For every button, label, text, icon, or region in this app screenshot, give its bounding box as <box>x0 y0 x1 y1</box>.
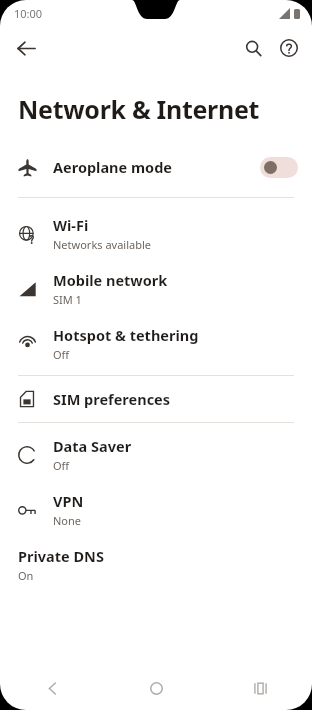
staticText: None <box>53 513 82 528</box>
staticText: Data Saver <box>53 436 132 456</box>
button[interactable]: Back <box>6 28 46 68</box>
button[interactable]: SIM preferences <box>0 376 312 422</box>
button[interactable]: Recent apps <box>208 666 312 710</box>
button[interactable]: Private DNS <box>0 537 312 592</box>
button[interactable]: Help <box>271 30 307 66</box>
staticText: Aeroplane mode <box>53 157 172 177</box>
button[interactable]: Mobile network <box>0 261 312 316</box>
staticText: Off <box>53 458 70 473</box>
staticText: Hotspot & tethering <box>53 325 199 345</box>
button[interactable]: Aeroplane mode toggle <box>260 157 298 178</box>
button[interactable]: Back <box>0 666 104 710</box>
staticText: Private DNS <box>18 546 104 566</box>
button[interactable]: Search <box>235 30 271 66</box>
staticText: VPN <box>53 491 84 511</box>
staticText: On <box>18 568 34 583</box>
button[interactable]: Data Saver <box>0 427 312 482</box>
button[interactable]: Home <box>104 666 208 710</box>
staticText: Mobile network <box>53 270 168 290</box>
staticText: Networks available <box>53 237 151 252</box>
button[interactable]: Hotspot & tethering <box>0 316 312 371</box>
staticText: Wi-Fi <box>53 215 89 235</box>
staticText: Network & Internet <box>18 92 260 126</box>
staticText: 10:00 <box>14 6 43 21</box>
staticText: SIM preferences <box>53 389 171 409</box>
button[interactable]: VPN <box>0 482 312 537</box>
button[interactable]: Wi-Fi <box>0 206 312 261</box>
button[interactable]: Aeroplane mode <box>0 146 312 188</box>
staticText: SIM 1 <box>53 292 82 307</box>
staticText: Off <box>53 347 70 362</box>
